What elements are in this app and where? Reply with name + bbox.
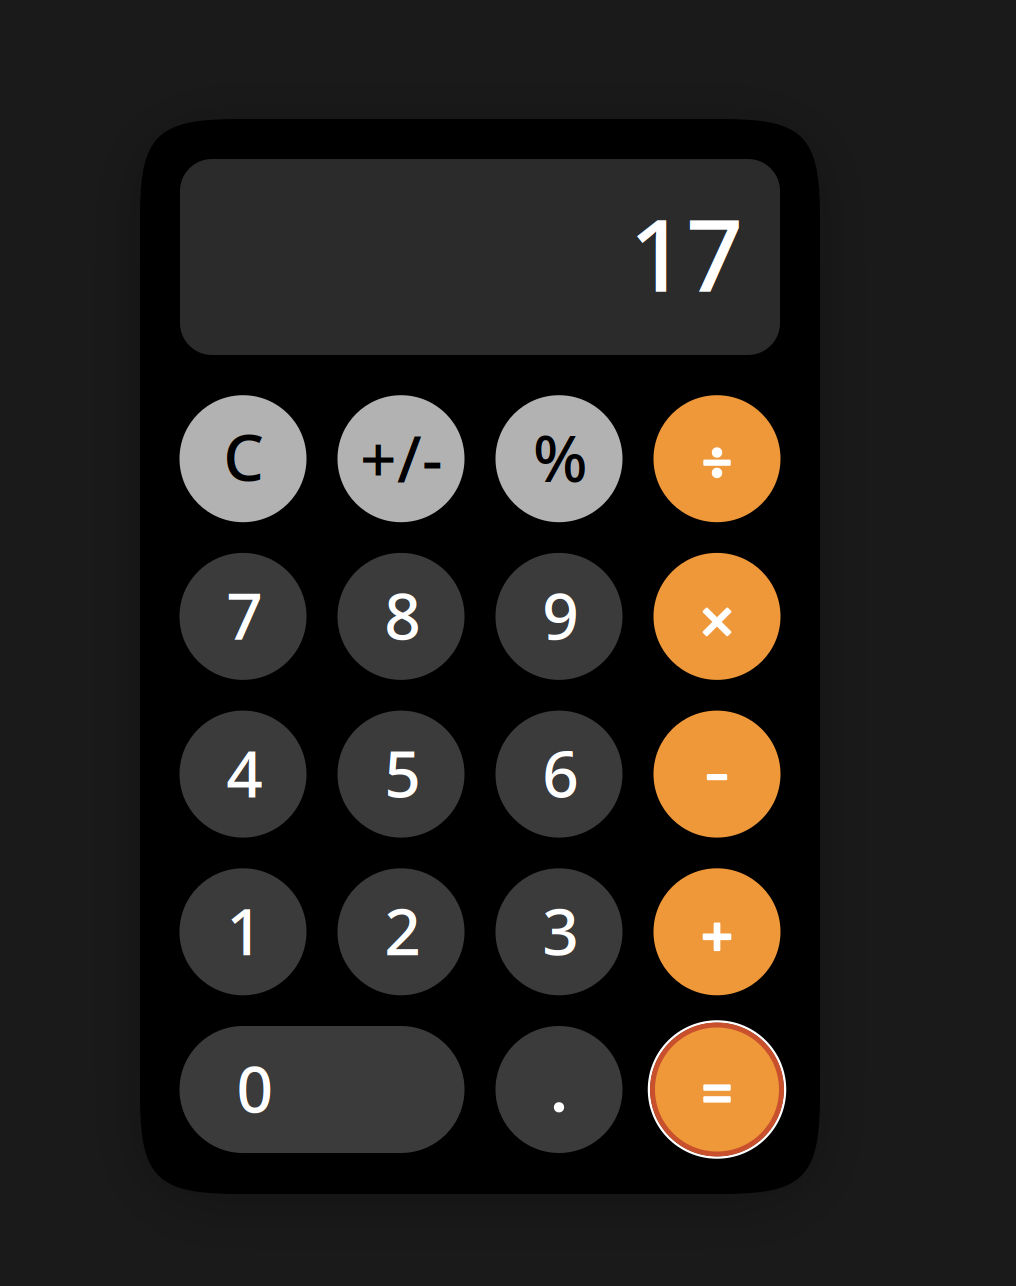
button[interactable]: 0 bbox=[179, 1026, 464, 1153]
staticText: 3 bbox=[542, 888, 579, 973]
staticText: 5 bbox=[384, 730, 421, 815]
button[interactable]: Plus bbox=[653, 868, 780, 995]
button[interactable]: Equals bbox=[653, 1026, 780, 1153]
staticText: 9 bbox=[542, 572, 579, 657]
staticText: 2 bbox=[384, 888, 421, 973]
staticText: +/- bbox=[360, 415, 443, 500]
staticText: 8 bbox=[384, 572, 421, 657]
staticText: 6 bbox=[542, 730, 579, 815]
button[interactable]: 1 bbox=[179, 868, 306, 995]
staticText: 1 bbox=[226, 888, 263, 973]
staticText: C bbox=[223, 414, 264, 499]
button[interactable]: Minus bbox=[653, 711, 780, 838]
staticText: 4 bbox=[226, 730, 263, 815]
staticText: 0 bbox=[236, 1045, 273, 1130]
button[interactable]: Divide bbox=[653, 395, 780, 522]
button[interactable]: 4 bbox=[179, 711, 306, 838]
button[interactable]: Plus minus bbox=[337, 395, 464, 522]
button[interactable]: 8 bbox=[337, 553, 464, 680]
button[interactable]: 7 bbox=[179, 553, 306, 680]
button[interactable]: 5 bbox=[337, 711, 464, 838]
button[interactable]: Clear bbox=[179, 395, 306, 522]
button[interactable]: 3 bbox=[495, 868, 622, 995]
button[interactable]: Multiply bbox=[653, 553, 780, 680]
staticText: 7 bbox=[226, 572, 263, 657]
button[interactable]: 2 bbox=[337, 868, 464, 995]
button[interactable]: 9 bbox=[495, 553, 622, 680]
staticText: % bbox=[533, 415, 588, 500]
staticText: 17 bbox=[629, 187, 743, 319]
button[interactable]: Percent bbox=[495, 395, 622, 522]
button[interactable]: Decimal point bbox=[495, 1026, 622, 1153]
button[interactable]: 6 bbox=[495, 711, 622, 838]
